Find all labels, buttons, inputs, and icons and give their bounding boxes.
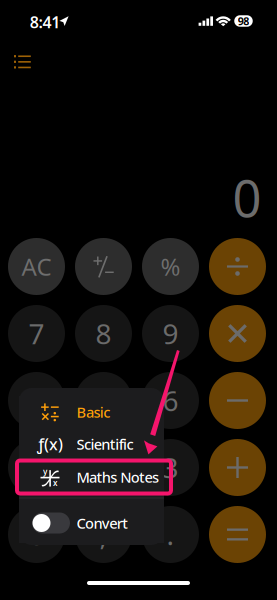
- staticText: .: [166, 516, 174, 553]
- staticText: Convert: [76, 513, 128, 533]
- staticText: 4: [28, 382, 44, 419]
- button[interactable]: 9: [142, 305, 199, 362]
- button[interactable]: Multiply: [209, 305, 266, 362]
- staticText: 1: [28, 449, 44, 486]
- staticText: ƒ(x): [37, 433, 63, 455]
- button[interactable]: 6: [142, 372, 199, 429]
- button[interactable]: Convert: [19, 503, 164, 543]
- staticText: %: [160, 251, 180, 282]
- staticText: 9: [162, 315, 178, 352]
- staticText: 7: [28, 315, 44, 352]
- staticText: 0: [28, 516, 44, 553]
- button[interactable]: 1: [8, 439, 65, 496]
- button[interactable]: 8: [75, 305, 132, 362]
- button[interactable]: Plus minus: [75, 238, 132, 295]
- button[interactable]: ƒ(x): [19, 428, 164, 460]
- button[interactable]: Subtract: [209, 372, 266, 429]
- button[interactable]: Add: [209, 439, 266, 496]
- button[interactable]: ,: [75, 506, 132, 563]
- button[interactable]: AC: [8, 238, 65, 295]
- staticText: 8:41: [30, 11, 60, 33]
- button[interactable]: y: [19, 461, 164, 493]
- button[interactable]: 4: [8, 372, 65, 429]
- staticText: 5: [95, 382, 111, 419]
- staticText: 0: [232, 164, 261, 231]
- staticText: 2: [95, 449, 111, 486]
- button[interactable]: %: [142, 238, 199, 295]
- button[interactable]: Calculator mode: [10, 43, 50, 77]
- staticText: ,: [99, 516, 107, 553]
- button[interactable]: Equals: [209, 506, 266, 563]
- staticText: AC: [21, 251, 51, 282]
- button[interactable]: Basic: [19, 396, 164, 428]
- staticText: 8: [95, 315, 111, 352]
- button[interactable]: Divide: [209, 238, 266, 295]
- staticText: Maths Notes: [76, 467, 159, 487]
- staticText: Scientific: [76, 434, 134, 454]
- button[interactable]: 5: [75, 372, 132, 429]
- staticText: 6: [162, 382, 178, 419]
- staticText: 98: [238, 14, 249, 28]
- button[interactable]: 0: [8, 506, 65, 563]
- staticText: x: [53, 478, 57, 488]
- staticText: 3: [162, 449, 178, 486]
- button[interactable]: 3: [142, 439, 199, 496]
- button[interactable]: .: [142, 506, 199, 563]
- button[interactable]: 2: [75, 439, 132, 496]
- staticText: Basic: [76, 402, 110, 422]
- staticText: y: [43, 466, 47, 477]
- button[interactable]: 7: [8, 305, 65, 362]
